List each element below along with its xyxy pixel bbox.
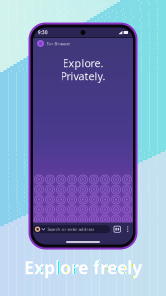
staticText: Privately. <box>60 69 105 83</box>
button[interactable]: Tabs <box>113 225 121 233</box>
staticText: Tor Browser <box>46 41 70 46</box>
button[interactable]: More <box>125 225 131 233</box>
button[interactable]: Search or enter address <box>33 225 110 233</box>
staticText: Explore freely <box>24 256 142 279</box>
staticText: Explore. <box>62 56 103 70</box>
staticText: Search or enter address <box>47 226 94 232</box>
staticText: 9:30 <box>38 29 48 36</box>
